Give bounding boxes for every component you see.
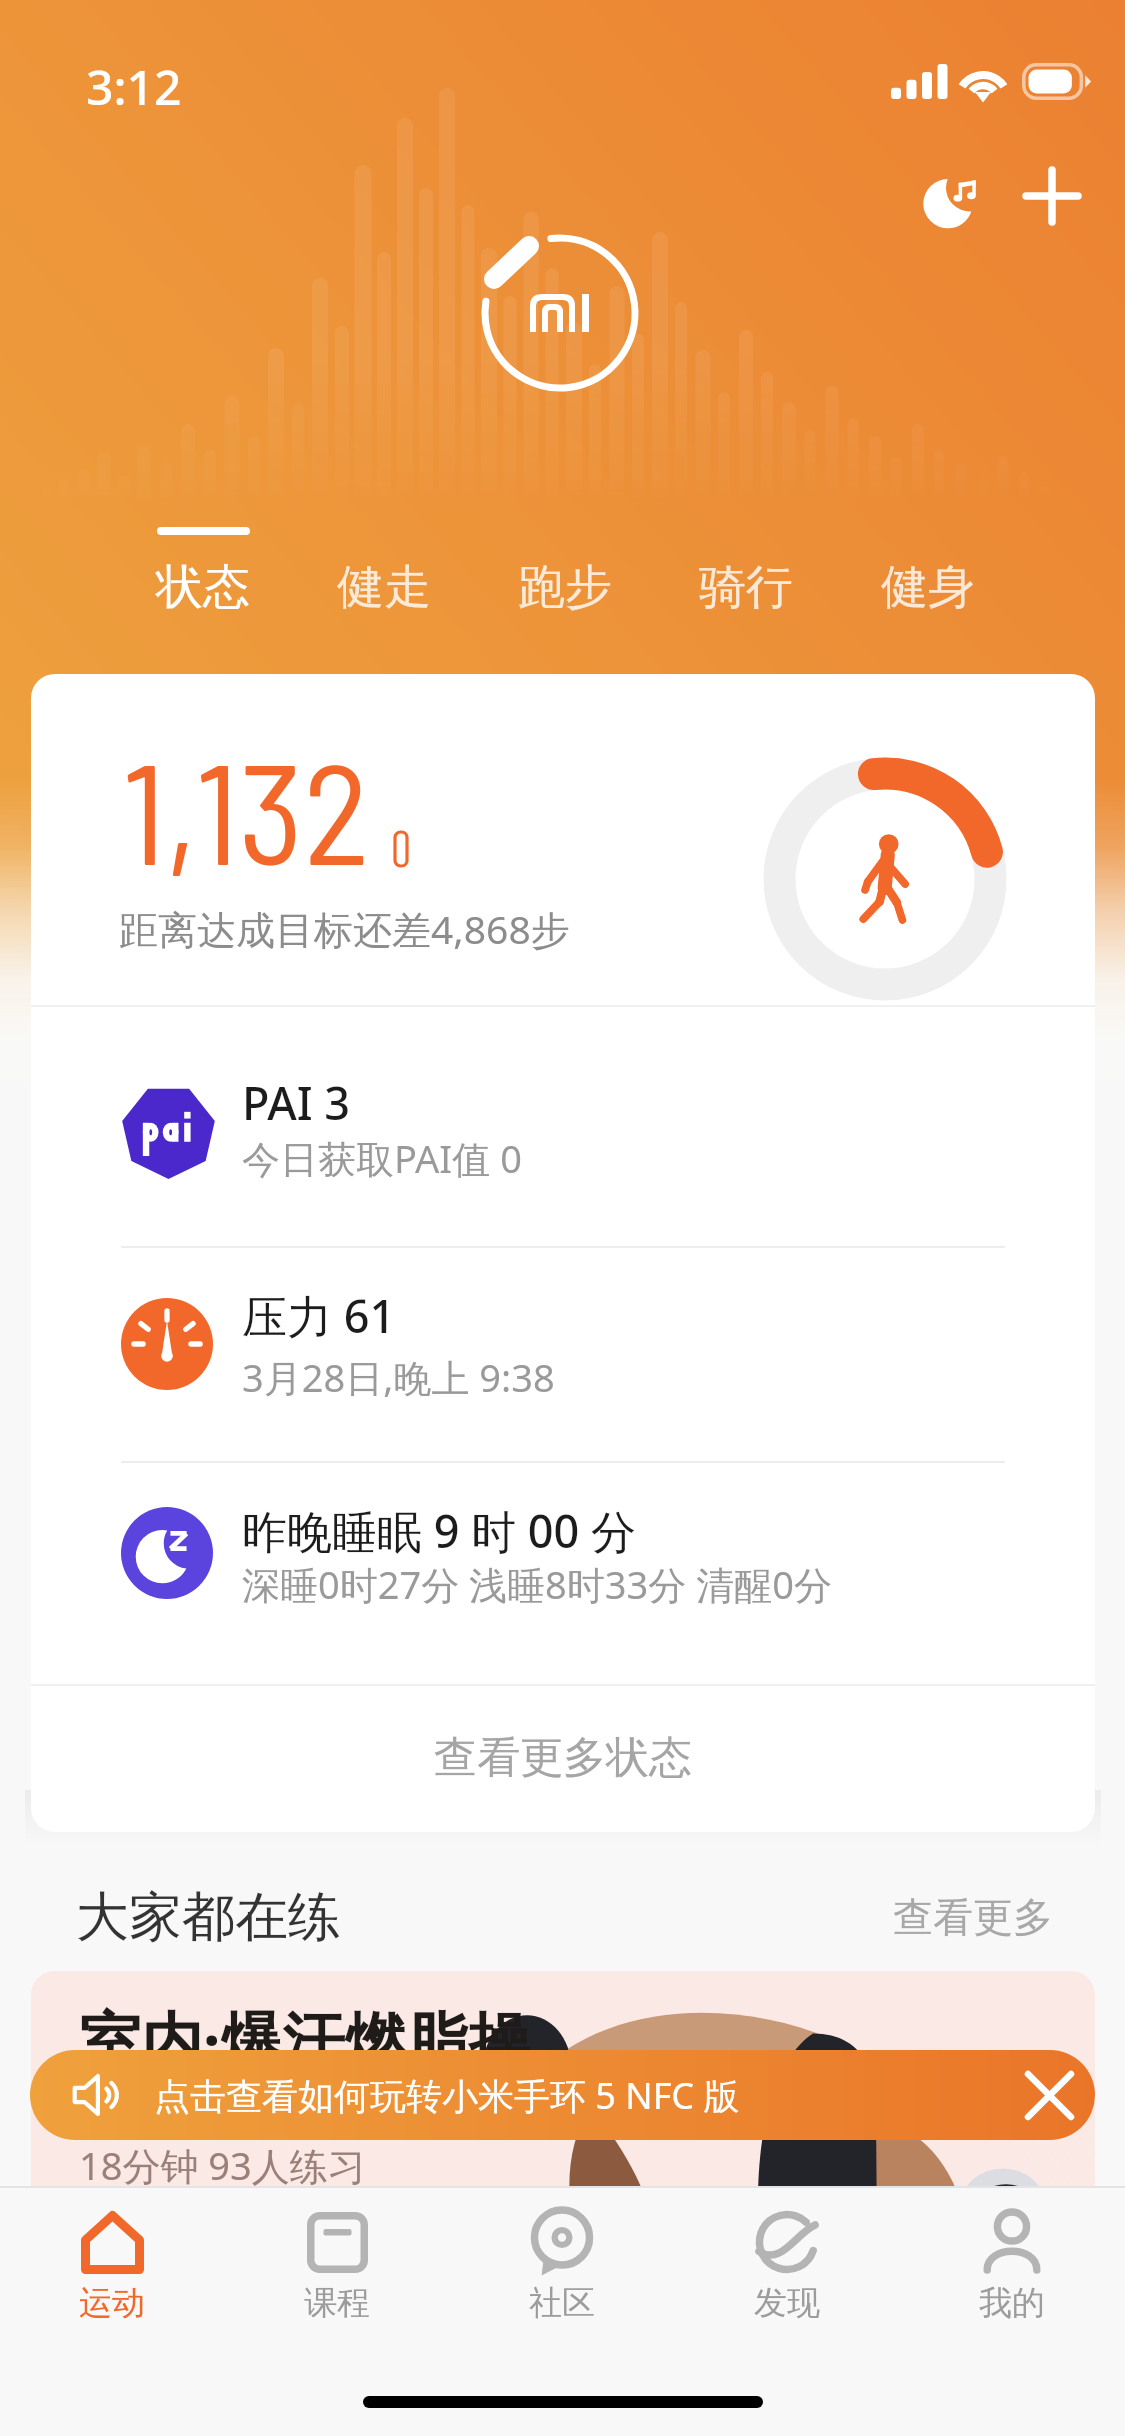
staticText: 3月28日,晚上 9:38 (242, 1351, 555, 1403)
button[interactable]: 健走 (304, 505, 464, 625)
button[interactable]: 骑行 (666, 505, 826, 625)
staticText: 昨晚睡眠 9 时 00 分 (242, 1500, 637, 1561)
button[interactable]: 发现 (675, 2194, 899, 2344)
button[interactable]: Close (1011, 2057, 1087, 2133)
button[interactable]: 运动 (0, 2194, 224, 2344)
button[interactable]: Sleep music (898, 145, 1006, 253)
staticText: 大家都在练 (76, 1884, 341, 1946)
staticText: 跑步 (518, 558, 612, 617)
staticText: 室内·爆汗燃脂操 (79, 1997, 531, 2082)
staticText: 课程 (304, 2282, 370, 2324)
button[interactable]: 查看更多状态 (31, 1684, 1095, 1832)
button[interactable]: 课程 (225, 2194, 449, 2344)
button[interactable]: 昨晚睡眠 9 时 00 分 (31, 1461, 1095, 1684)
button[interactable]: Add (998, 142, 1106, 250)
staticText: 距离达成目标还差4,868步 (119, 902, 570, 955)
staticText: 发现 (754, 2282, 820, 2324)
staticText: PAI 3 (242, 1072, 351, 1133)
button[interactable]: 点击查看如何玩转小米手环 5 NFC 版 (30, 2050, 1095, 2140)
staticText: 查看更多状态 (434, 1731, 692, 1785)
staticText: 深睡0时27分 浅睡8时33分 清醒0分 (242, 1558, 832, 1610)
staticText: 运动 (79, 2282, 145, 2324)
staticText: 骑行 (699, 558, 793, 617)
staticText: 1,132 (123, 725, 370, 893)
button[interactable]: 社区 (450, 2194, 674, 2344)
button[interactable]: 我的 (900, 2194, 1124, 2344)
staticText: 查看更多 (893, 1892, 1053, 1942)
staticText: 点击查看如何玩转小米手环 5 NFC 版 (154, 2071, 740, 2120)
button[interactable]: PAI 3 (31, 1005, 1095, 1246)
staticText: 18分钟 93人练习 (79, 2139, 366, 2191)
button[interactable]: 大家都在练 (76, 1884, 341, 1946)
staticText: 压力 61 (242, 1285, 396, 1346)
staticText: 健走 (337, 558, 431, 617)
staticText: 社区 (529, 2282, 595, 2324)
button[interactable]: 健身 (848, 505, 1008, 625)
staticText: 状态 (156, 558, 250, 617)
button[interactable]: 压力 61 (31, 1246, 1095, 1461)
staticText: 我的 (979, 2282, 1045, 2324)
button[interactable]: 跑步 (485, 505, 645, 625)
button[interactable]: 状态 (123, 505, 283, 625)
staticText: 3:12 (86, 54, 182, 119)
staticText: 健身 (881, 558, 975, 617)
button[interactable]: 室内·爆汗燃脂操 (31, 1971, 1095, 2231)
button[interactable]: 查看更多 (893, 1892, 1053, 1944)
button[interactable]: 1,132 (31, 674, 1095, 1005)
staticText: 今日获取PAI值 0 (242, 1132, 522, 1184)
